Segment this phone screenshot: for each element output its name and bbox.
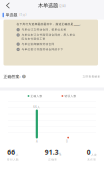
button[interactable]: Back bbox=[2, 0, 13, 11]
button[interactable]: B bbox=[16, 33, 94, 40]
staticText: 与单位协商解除劳动合同 bbox=[22, 42, 55, 46]
button[interactable]: 立即查看解析 bbox=[82, 75, 100, 78]
staticText: 正确人数 bbox=[30, 94, 42, 98]
button[interactable]: D bbox=[16, 48, 94, 51]
button[interactable]: A bbox=[16, 28, 94, 31]
staticText: 答对人数 bbox=[7, 158, 19, 161]
staticText: 66人 bbox=[33, 105, 40, 109]
button[interactable]: C bbox=[16, 42, 94, 46]
staticText: 未作答 bbox=[87, 158, 96, 161]
staticText: 0 bbox=[87, 148, 91, 157]
staticText: B bbox=[23, 75, 25, 78]
staticText: (2/4) bbox=[59, 4, 66, 8]
staticText: 应当支付双倍工资 bbox=[22, 37, 46, 40]
staticText: 与单位签订书面劳动合同的于下 bbox=[22, 48, 64, 51]
staticText: A bbox=[36, 140, 38, 143]
staticText: % bbox=[59, 153, 61, 156]
staticText: 91.3 bbox=[45, 148, 59, 157]
staticText: (1分) bbox=[19, 13, 26, 17]
staticText: 正确率 bbox=[48, 158, 57, 161]
staticText: 错误人数 bbox=[64, 94, 76, 98]
staticText: C bbox=[18, 43, 19, 45]
staticText: 立即查看解析 bbox=[82, 75, 100, 78]
staticText: 66 bbox=[7, 148, 15, 157]
staticText: 单选题 bbox=[6, 12, 18, 17]
staticText: 与单位未订立书面劳动合同的，用人单位 bbox=[22, 33, 76, 37]
staticText: 在下列行为选择题的题目中，描述正确的是______。 bbox=[16, 22, 82, 26]
staticText: 人 bbox=[16, 153, 19, 157]
staticText: 与单位订立劳动合同，签单位名称 bbox=[22, 28, 67, 31]
staticText: 正确答案: bbox=[3, 74, 20, 79]
staticText: 木单选题 bbox=[38, 2, 58, 9]
staticText: B bbox=[66, 140, 68, 143]
staticText: 人次 bbox=[91, 153, 97, 157]
staticText: A bbox=[18, 29, 19, 31]
